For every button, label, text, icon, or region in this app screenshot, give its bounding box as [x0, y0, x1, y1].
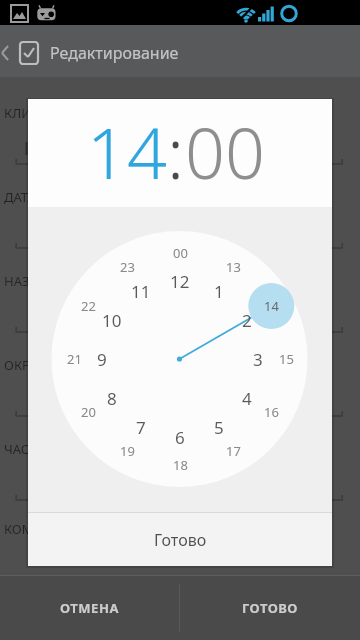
staticText: 13: [226, 258, 241, 276]
staticText: :: [167, 104, 185, 199]
staticText: 14: [87, 104, 167, 199]
button[interactable]: ОТМЕНА: [0, 576, 179, 640]
staticText: Готово: [154, 529, 207, 551]
staticText: 21: [67, 350, 82, 368]
staticText: 19: [120, 442, 135, 460]
button[interactable]: ГОТОВО: [180, 576, 360, 640]
staticText: 1: [214, 280, 224, 302]
staticText: 00: [173, 244, 188, 262]
staticText: 4: [242, 387, 252, 409]
staticText: 12: [170, 270, 190, 292]
staticText: НАЗВАНИЕ: [4, 272, 73, 290]
staticText: 3: [253, 348, 263, 370]
staticText: 18: [173, 456, 188, 474]
staticText: 14: [264, 297, 279, 315]
staticText: ЧАСЫ: [4, 440, 41, 458]
staticText: КЛИЕНТ: [4, 104, 56, 122]
staticText: 20: [81, 403, 96, 421]
staticText: 8: [107, 387, 117, 409]
staticText: КОММЕНТАРИЙ: [4, 520, 105, 538]
staticText: ОКРУГ: [4, 356, 45, 374]
staticText: ГОТОВО: [242, 599, 298, 617]
staticText: 17: [226, 442, 241, 460]
staticText: 9: [97, 348, 107, 370]
staticText: 23: [120, 258, 135, 276]
staticText: ДАТА: [4, 188, 36, 206]
staticText: 11: [131, 280, 151, 302]
staticText: 7: [136, 416, 146, 438]
staticText: ОТМЕНА: [60, 599, 119, 617]
staticText: Редактирование: [50, 42, 179, 64]
staticText: 5: [214, 416, 224, 438]
staticText: 22: [81, 297, 96, 315]
staticText: 2: [242, 309, 252, 331]
staticText: 16: [264, 403, 279, 421]
button[interactable]: Готово: [28, 513, 332, 566]
staticText: 6: [175, 426, 185, 448]
staticText: 10: [102, 309, 122, 331]
button[interactable]: Редактирование: [0, 25, 360, 77]
staticText: 00: [185, 104, 265, 199]
staticText: 15: [279, 350, 294, 368]
